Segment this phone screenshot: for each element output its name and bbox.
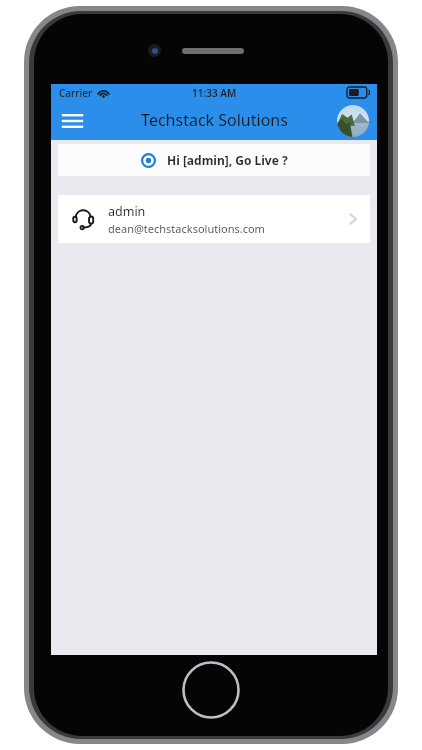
staticText: admin xyxy=(108,203,146,220)
button[interactable]: Profile xyxy=(337,105,369,137)
staticText: Carrier xyxy=(59,86,93,100)
staticText: 11:33 AM xyxy=(192,86,237,100)
button[interactable]: admin xyxy=(58,195,370,243)
staticText: Hi [admin], Go Live ? xyxy=(167,152,288,168)
staticText: dean@techstacksolutions.com xyxy=(108,221,265,236)
button[interactable]: Hi [admin], Go Live ? xyxy=(58,144,370,176)
staticText: Techstack Solutions xyxy=(141,109,288,131)
button[interactable]: Open navigation menu xyxy=(51,101,93,140)
